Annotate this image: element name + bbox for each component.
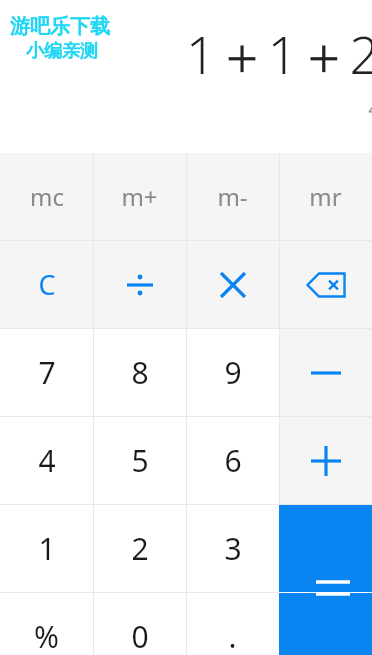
staticText: m-	[217, 180, 248, 213]
staticText: 3	[224, 528, 242, 569]
button[interactable]: mr	[279, 153, 372, 240]
staticText: m+	[121, 180, 158, 213]
button[interactable]: Equals	[279, 505, 372, 592]
button[interactable]: .	[186, 593, 279, 655]
staticText: 5	[131, 440, 149, 481]
staticText: C	[38, 266, 56, 303]
staticText: .	[228, 616, 237, 655]
button[interactable]: 9	[186, 329, 279, 416]
button[interactable]: m-	[186, 153, 279, 240]
button[interactable]: %	[0, 593, 93, 655]
button[interactable]: Equals	[279, 593, 372, 655]
button[interactable]: 8	[93, 329, 186, 416]
staticText: 4	[368, 86, 372, 127]
staticText: 1＋1＋2	[186, 18, 372, 89]
button[interactable]	[93, 241, 186, 328]
button[interactable]: Backspace	[279, 241, 372, 328]
button[interactable]: 5	[93, 417, 186, 504]
button[interactable]: 3	[186, 505, 279, 592]
button[interactable]: Plus	[279, 417, 372, 504]
staticText: 1	[38, 528, 56, 569]
button[interactable]: m+	[93, 153, 186, 240]
staticText: 8	[131, 352, 149, 393]
button[interactable]: 2	[93, 505, 186, 592]
button[interactable]	[186, 241, 279, 328]
button[interactable]: 6	[186, 417, 279, 504]
staticText: 4	[38, 440, 56, 481]
staticText: 小编亲测	[26, 40, 98, 63]
staticText: 2	[131, 528, 149, 569]
button[interactable]: C	[0, 241, 93, 328]
staticText: 9	[224, 352, 242, 393]
staticText: mc	[30, 180, 64, 213]
button[interactable]: Minus	[279, 329, 372, 416]
button[interactable]: 1	[0, 505, 93, 592]
button[interactable]: mc	[0, 153, 93, 240]
button[interactable]: 7	[0, 329, 93, 416]
staticText: 7	[38, 352, 56, 393]
staticText: %	[34, 616, 59, 655]
staticText: 0	[131, 616, 149, 655]
staticText: mr	[309, 180, 342, 213]
button[interactable]: 4	[0, 417, 93, 504]
button[interactable]: 0	[93, 593, 186, 655]
staticText: 6	[224, 440, 242, 481]
staticText: 游吧乐下载	[10, 14, 110, 39]
